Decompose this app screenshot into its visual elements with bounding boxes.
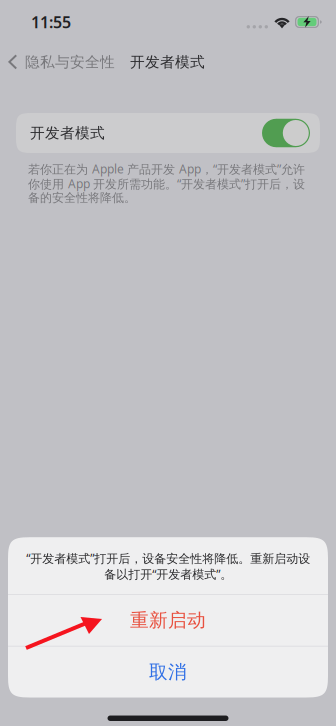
- button[interactable]: 隐私与安全性: [0, 45, 119, 79]
- staticText: 11:55: [31, 11, 71, 33]
- staticText: 开发者模式: [130, 53, 205, 71]
- staticText: 隐私与安全性: [25, 53, 115, 71]
- staticText: 取消: [149, 660, 187, 683]
- staticText: “开发者模式”打开后，设备安全性将降低。重新启动设备以打开“开发者模式”。: [26, 550, 310, 582]
- button[interactable]: 取消: [8, 646, 328, 697]
- staticText: 重新启动: [130, 609, 206, 632]
- button[interactable]: 开发者模式: [16, 113, 320, 153]
- staticText: 开发者模式: [30, 124, 105, 142]
- staticText: 若你正在为 Apple 产品开发 App，“开发者模式”允许你使用 App 开发…: [28, 161, 305, 205]
- button[interactable]: 重新启动: [8, 595, 328, 646]
